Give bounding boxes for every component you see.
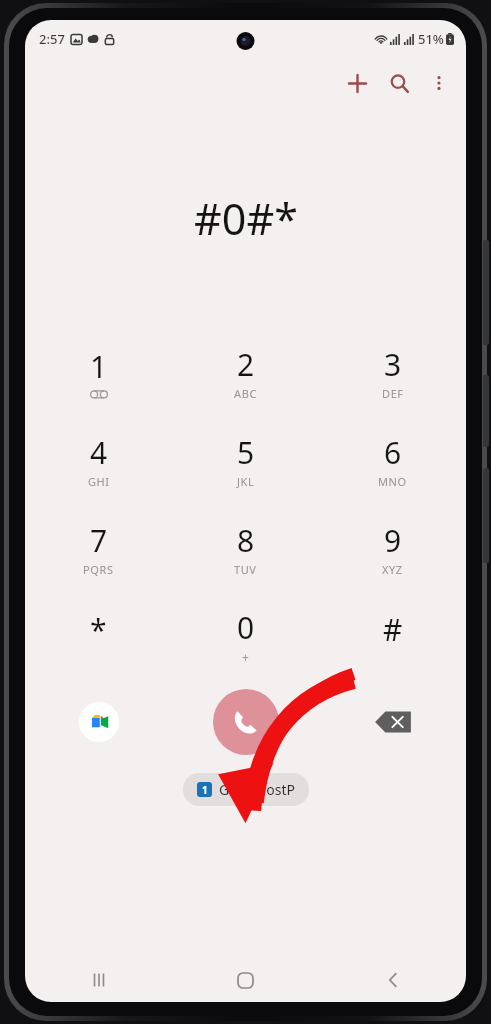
staticText: PQRS <box>83 562 114 577</box>
button[interactable]: 4 <box>25 416 172 504</box>
staticText: + <box>242 649 250 665</box>
button[interactable]: 5 <box>172 416 319 504</box>
button[interactable]: Backspace <box>374 709 412 735</box>
staticText: XYZ <box>382 562 403 577</box>
staticText: 7 <box>90 520 108 561</box>
button[interactable]: Add contact <box>336 62 378 104</box>
button[interactable]: 9 <box>319 504 466 592</box>
button[interactable]: * <box>25 592 172 680</box>
staticText: 1 <box>90 346 108 387</box>
staticText: 2 <box>237 344 255 385</box>
staticText: 51% <box>418 30 444 48</box>
staticText: #0#* <box>194 189 298 248</box>
staticText: TUV <box>234 562 257 577</box>
button[interactable]: 3 <box>319 328 466 416</box>
staticText: 5 <box>237 432 255 473</box>
button[interactable]: Video call <box>79 702 119 742</box>
staticText: ABC <box>234 386 257 401</box>
button[interactable]: 6 <box>319 416 466 504</box>
staticText: JKL <box>237 474 255 489</box>
staticText: 9 <box>384 520 402 561</box>
staticText: DEF <box>382 386 404 401</box>
staticText: 8 <box>237 520 255 561</box>
staticText: 4 <box>90 432 108 473</box>
button[interactable]: 0 <box>172 592 319 680</box>
button[interactable]: # <box>319 592 466 680</box>
button[interactable]: 1 <box>183 773 309 806</box>
staticText: * <box>90 609 107 650</box>
button[interactable]: Recents <box>25 958 172 1002</box>
staticText: 2:57 <box>39 30 65 48</box>
staticText: GlobePostP <box>219 780 295 799</box>
button[interactable]: 1 <box>25 328 172 416</box>
staticText: 0 <box>237 607 255 648</box>
staticText: # <box>383 609 403 650</box>
button[interactable]: Home <box>172 958 319 1002</box>
button[interactable]: Back <box>319 958 466 1002</box>
staticText: GHI <box>88 474 110 489</box>
button[interactable]: 8 <box>172 504 319 592</box>
button[interactable]: Search <box>378 62 420 104</box>
staticText: 6 <box>384 432 402 473</box>
button[interactable]: 2 <box>172 328 319 416</box>
button[interactable]: More options <box>420 64 458 102</box>
staticText: 1 <box>202 783 208 797</box>
button[interactable]: 7 <box>25 504 172 592</box>
staticText: 3 <box>384 344 402 385</box>
button[interactable]: Call <box>213 689 279 755</box>
staticText: MNO <box>378 474 407 489</box>
